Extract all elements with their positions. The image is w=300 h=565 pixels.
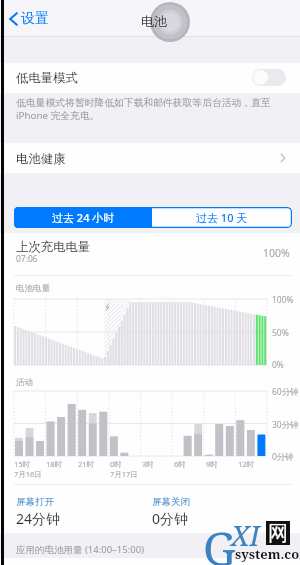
staticText: 3时 bbox=[142, 459, 154, 469]
staticText: 上次充电电量 bbox=[16, 239, 91, 255]
staticText: 0% bbox=[272, 359, 284, 371]
staticText: 电池 bbox=[141, 13, 167, 29]
staticText: 100% bbox=[263, 246, 290, 260]
staticText: 过去 24 小时 bbox=[52, 210, 115, 225]
staticText: 设置 bbox=[21, 10, 49, 28]
staticText: 30分钟 bbox=[272, 419, 299, 431]
staticText: 24分钟 bbox=[16, 509, 61, 528]
staticText: 12时 bbox=[238, 459, 255, 469]
staticText: 21时 bbox=[78, 459, 95, 469]
staticText: 9时 bbox=[206, 459, 218, 469]
staticText: 活动 bbox=[16, 377, 33, 388]
staticText: XI bbox=[231, 516, 260, 554]
staticText: 6时 bbox=[174, 459, 186, 469]
staticText: G bbox=[203, 517, 236, 565]
staticText: 屏幕关闭 bbox=[152, 496, 190, 508]
staticText: 屏幕打开 bbox=[16, 496, 54, 508]
button[interactable]: 设置 bbox=[9, 5, 49, 32]
staticText: 网 bbox=[268, 521, 288, 545]
staticText: 60分钟 bbox=[272, 386, 299, 398]
staticText: 低电量模式将暂时降低如下载和邮件获取等后台活动，直至 bbox=[16, 97, 271, 109]
staticText: 7月17日 bbox=[110, 469, 138, 479]
button[interactable] bbox=[0, 143, 300, 173]
staticText: 15时 bbox=[14, 459, 31, 469]
staticText: 07:06 bbox=[16, 253, 38, 265]
staticText: 0时 bbox=[110, 459, 122, 469]
button[interactable]: 过去 24 小时 bbox=[14, 207, 152, 228]
staticText: 18时 bbox=[46, 459, 63, 469]
staticText: 电池电量 bbox=[16, 283, 50, 294]
button[interactable]: 低电量模式开关 bbox=[252, 69, 286, 86]
staticText: 应用的电池用量 (14:00–15:00) bbox=[16, 543, 144, 556]
staticText: 0分钟 bbox=[272, 451, 294, 463]
staticText: 50% bbox=[272, 327, 289, 339]
staticText: 100% bbox=[272, 294, 294, 306]
staticText: 0分钟 bbox=[152, 509, 189, 528]
button[interactable]: 过去 10 天 bbox=[152, 207, 292, 228]
staticText: 过去 10 天 bbox=[196, 210, 248, 225]
staticText: 电池健康 bbox=[16, 151, 66, 167]
staticText: 7月16日 bbox=[14, 469, 42, 479]
staticText: iPhone 完全充电。 bbox=[16, 109, 100, 122]
staticText: system.com bbox=[235, 545, 300, 563]
staticText: 低电量模式 bbox=[16, 70, 78, 86]
